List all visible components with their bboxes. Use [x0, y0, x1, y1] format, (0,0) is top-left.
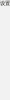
staticText: 设置	[0, 0, 10, 7]
